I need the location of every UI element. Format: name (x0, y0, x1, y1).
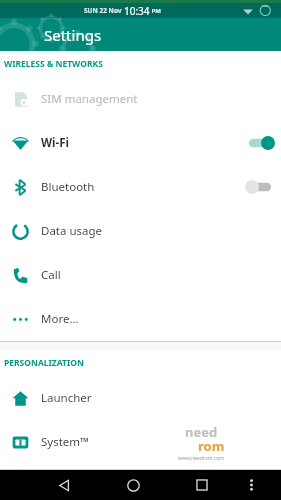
staticText: WIRELESS & NETWORKS (4, 58, 103, 70)
button[interactable]: Menu (239, 473, 263, 497)
button[interactable]: Wi-Fi (0, 121, 281, 165)
staticText: PERSONALIZATION (4, 357, 84, 369)
staticText: Wi-Fi (41, 135, 69, 151)
button[interactable]: Launcher (0, 376, 281, 420)
button[interactable]: Back (49, 470, 79, 500)
button[interactable]: Bluetooth off (239, 165, 281, 209)
staticText: rom (198, 437, 225, 455)
staticText: www.needrom.com (178, 455, 224, 462)
staticText: System™ (41, 434, 89, 450)
staticText: More... (41, 311, 79, 327)
staticText: Settings (44, 25, 102, 45)
staticText: SIM management (41, 91, 138, 107)
button[interactable]: Recent apps (187, 470, 217, 500)
staticText: Call (41, 267, 61, 283)
staticText: need (185, 423, 218, 441)
staticText: 10:34 (124, 4, 150, 18)
button[interactable]: SIM management (0, 77, 281, 121)
staticText: Launcher (41, 390, 92, 406)
staticText: SUN 22 Nov (84, 6, 124, 15)
staticText: PM (150, 7, 161, 15)
staticText: Bluetooth (41, 179, 95, 195)
button[interactable]: System™ (0, 420, 281, 464)
staticText: Data usage (41, 223, 103, 239)
button[interactable]: Wi-Fi on (239, 121, 281, 165)
button[interactable]: Home (118, 470, 148, 500)
button[interactable]: Data usage (0, 209, 281, 253)
button[interactable]: More... (0, 297, 281, 341)
button[interactable]: Call (0, 253, 281, 297)
button[interactable]: Bluetooth (0, 165, 281, 209)
